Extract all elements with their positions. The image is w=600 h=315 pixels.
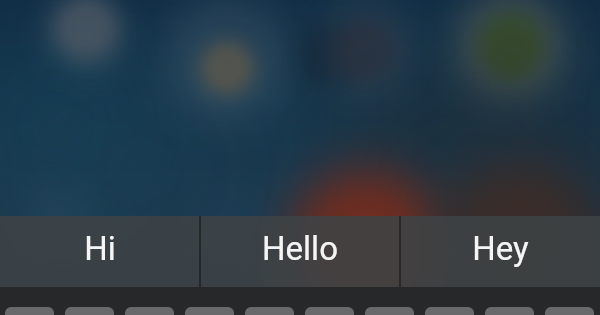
button[interactable]: o: [485, 307, 534, 315]
button[interactable]: i: [425, 307, 474, 315]
button[interactable]: Hi: [0, 216, 200, 287]
button[interactable]: u: [365, 307, 414, 315]
button[interactable]: y: [305, 307, 354, 315]
button[interactable]: q: [5, 307, 54, 315]
button[interactable]: w: [65, 307, 114, 315]
button[interactable]: Hello: [200, 216, 400, 287]
staticText: Hi: [84, 229, 116, 268]
staticText: Hello: [262, 229, 338, 268]
button[interactable]: e: [125, 307, 174, 315]
button[interactable]: t: [245, 307, 294, 315]
button[interactable]: p: [545, 307, 594, 315]
button[interactable]: r: [185, 307, 234, 315]
button[interactable]: Hey: [400, 216, 600, 287]
staticText: Hey: [472, 229, 529, 268]
